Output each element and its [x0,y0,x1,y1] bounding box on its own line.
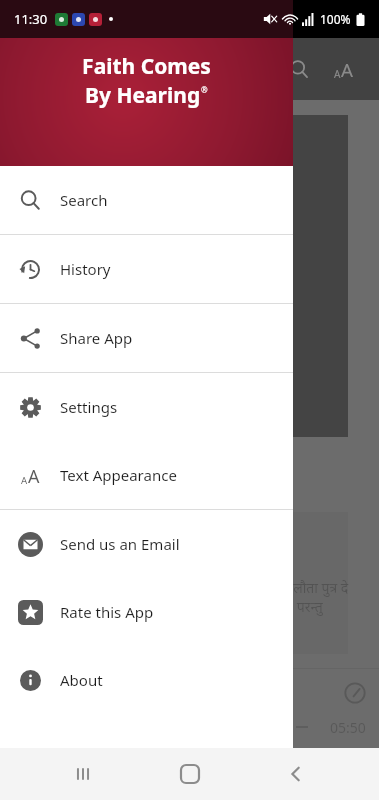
staticText: 05:50 [330,718,366,737]
button[interactable]: Back [272,750,320,798]
button[interactable]: Share App [0,304,293,372]
staticText: By Hearing [85,81,201,110]
staticText: A [341,57,353,81]
staticText: A [28,464,40,487]
staticText: Rate this App [60,602,154,622]
staticText: Faith Comes [40,133,274,185]
staticText: Share App [60,328,133,348]
button[interactable]: Search [0,166,293,234]
staticText: 100% [320,11,351,27]
staticText: Settings [60,397,118,417]
staticText: 11:30 [14,10,48,28]
button[interactable]: Recents [59,750,107,798]
staticText: Text Appearance [60,465,177,485]
button[interactable]: Home [166,750,214,798]
staticText: परमेश्वर ने जगत से ऐसा प्रेम रखा कि उसने… [26,578,360,635]
button[interactable]: Search [277,47,321,91]
staticText: History [60,259,111,279]
button[interactable]: History [0,235,293,303]
staticText: About [60,670,103,690]
staticText: Search [60,190,108,210]
staticText: ® [201,84,208,95]
button[interactable]: About [0,646,293,714]
staticText: Faith Comes [82,52,211,81]
button[interactable]: Playback speed [338,676,372,710]
button[interactable]: Text Appearance [321,47,365,91]
button[interactable]: Settings [0,373,293,441]
staticText: A [334,67,341,81]
button[interactable]: Rate this App [0,578,293,646]
button[interactable]: Send us an Email [0,510,293,578]
staticText: A [21,474,28,487]
button[interactable]: A [0,441,293,509]
staticText: Send us an Email [60,534,180,554]
